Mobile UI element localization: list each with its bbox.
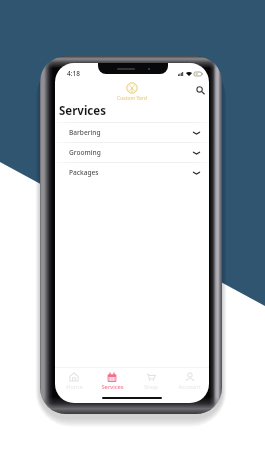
staticText: Custom Yard — [117, 95, 147, 102]
staticText: Home — [66, 383, 83, 391]
staticText: 4:18 — [67, 69, 80, 78]
button[interactable]: Grooming — [55, 143, 209, 162]
button[interactable]: Services — [93, 368, 131, 394]
button[interactable]: Barbering — [55, 123, 209, 142]
button[interactable]: Account — [170, 368, 209, 394]
staticText: Grooming — [69, 148, 101, 157]
button[interactable]: Shop — [131, 368, 170, 394]
button[interactable]: Search — [193, 83, 207, 97]
staticText: Services — [59, 103, 106, 119]
staticText: Account — [178, 383, 201, 391]
staticText: Services — [101, 383, 124, 391]
staticText: Barbering — [69, 128, 101, 137]
button[interactable]: Packages — [55, 163, 209, 182]
button[interactable]: Home — [55, 368, 93, 394]
staticText: Shop — [144, 383, 158, 391]
staticText: Packages — [69, 168, 99, 177]
